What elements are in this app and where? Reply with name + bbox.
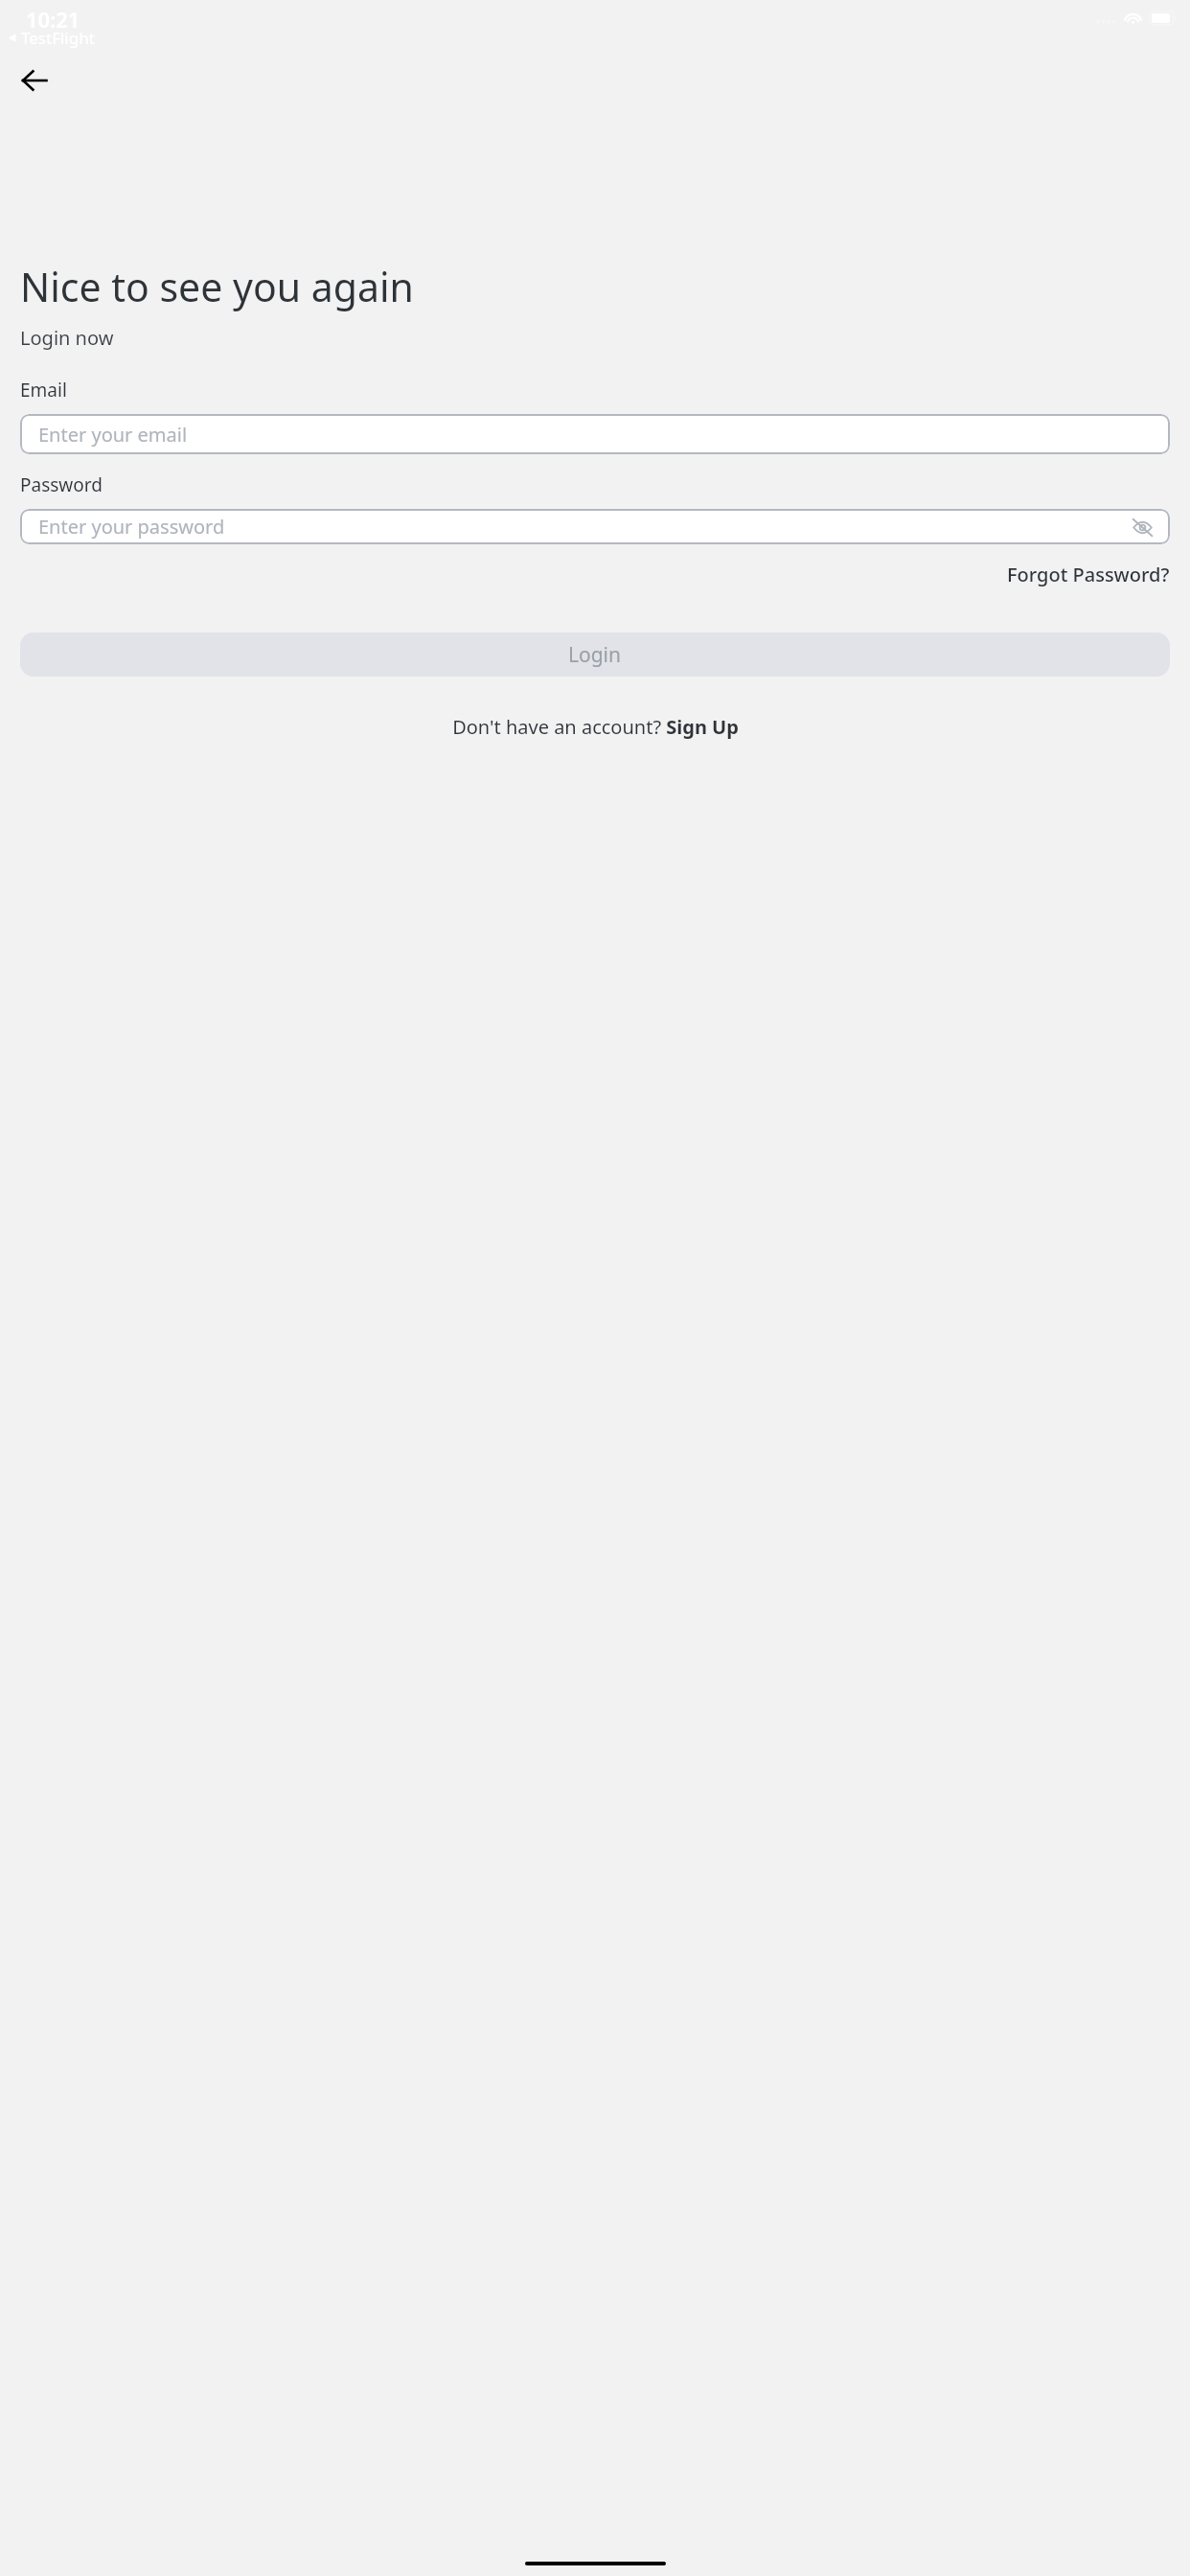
staticText: Don't have an account? Sign Up <box>452 714 739 740</box>
staticText: Email <box>20 378 67 402</box>
staticText: Password <box>20 472 103 497</box>
button[interactable]: Forgot Password? <box>1007 558 1170 591</box>
staticText: TestFlight <box>21 27 95 49</box>
staticText: Enter your password <box>38 514 225 540</box>
staticText: Login <box>568 641 622 669</box>
button[interactable]: Back <box>13 59 56 102</box>
button[interactable]: Enter your password <box>20 509 1170 544</box>
button[interactable]: Login <box>20 632 1170 677</box>
staticText: Enter your email <box>38 422 188 448</box>
button[interactable]: Don't have an account? Sign Up <box>446 710 744 744</box>
staticText: 10:21 <box>26 5 80 34</box>
staticText: Nice to see you again <box>20 260 414 313</box>
button[interactable]: Show password <box>1128 513 1156 541</box>
staticText: Login now <box>20 325 114 351</box>
staticText: Forgot Password? <box>1007 562 1170 587</box>
button[interactable]: Enter your email <box>20 414 1170 454</box>
